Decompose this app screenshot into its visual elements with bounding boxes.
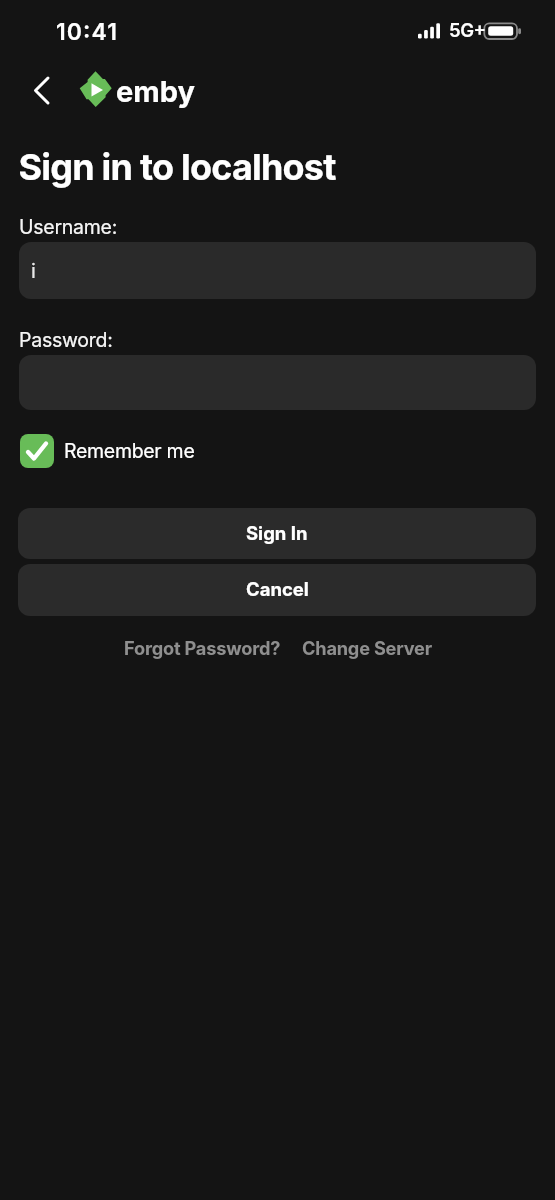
button[interactable] <box>24 70 60 110</box>
button[interactable]: Remember me <box>20 434 195 468</box>
staticText: 5G+ <box>449 19 486 41</box>
button[interactable]: i <box>19 242 536 299</box>
staticText: Cancel <box>246 578 309 600</box>
staticText: Sign In <box>246 522 308 544</box>
button[interactable]: Sign In <box>18 508 536 559</box>
staticText: Forgot Password? <box>124 637 281 659</box>
button[interactable]: Change Server <box>302 637 432 659</box>
staticText: Change Server <box>302 637 432 659</box>
staticText: 10:41 <box>56 18 119 46</box>
staticText: Username: <box>19 215 118 239</box>
staticText: Sign in to localhost <box>19 145 336 189</box>
staticText: Password: <box>19 328 113 352</box>
staticText: emby <box>116 74 195 109</box>
button[interactable]: Cancel <box>18 564 536 616</box>
staticText: i <box>31 259 36 283</box>
button[interactable]: Forgot Password? <box>124 637 281 659</box>
staticText: Remember me <box>64 439 195 463</box>
